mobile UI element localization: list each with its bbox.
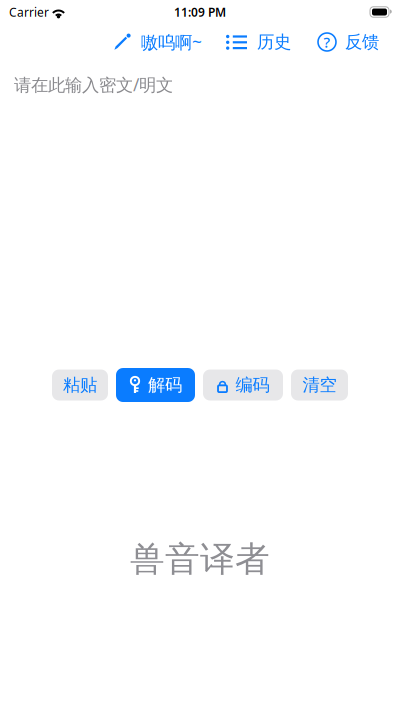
button[interactable]: 历史 bbox=[226, 31, 291, 53]
button[interactable]: 清空 bbox=[291, 369, 348, 400]
staticText: Carrier bbox=[9, 4, 49, 20]
staticText: 解码 bbox=[148, 374, 182, 396]
staticText: ? bbox=[323, 32, 330, 52]
staticText: 清空 bbox=[302, 374, 336, 396]
button[interactable]: 解码 bbox=[116, 368, 195, 402]
button[interactable]: 编码 bbox=[203, 369, 283, 400]
staticText: 11:09 PM bbox=[174, 4, 226, 20]
staticText: 嗷呜啊~ bbox=[141, 30, 202, 53]
staticText: 兽音译者 bbox=[130, 538, 270, 581]
button[interactable]: 粘贴 bbox=[52, 369, 108, 400]
staticText: 编码 bbox=[235, 374, 269, 396]
button[interactable]: ? bbox=[318, 31, 379, 53]
button[interactable]: 嗷呜啊~ bbox=[114, 30, 202, 53]
staticText: 反馈 bbox=[345, 31, 379, 53]
staticText: 粘贴 bbox=[63, 374, 97, 396]
staticText: 历史 bbox=[257, 31, 291, 53]
staticText: 请在此输入密文/明文 bbox=[14, 73, 173, 96]
